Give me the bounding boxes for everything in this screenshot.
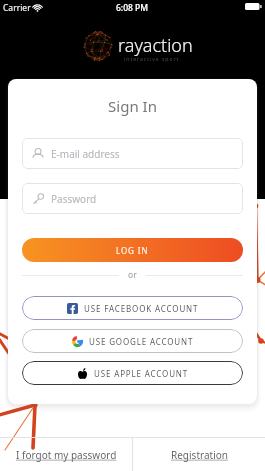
- staticText: E-mail address: [51, 147, 120, 161]
- button[interactable]: Registration: [133, 438, 265, 471]
- button[interactable]: LOG IN: [22, 238, 243, 262]
- button[interactable]: I forgot my password: [0, 438, 132, 471]
- button[interactable]: USE GOOGLE ACCOUNT: [22, 329, 243, 353]
- staticText: interactive sport: [124, 56, 180, 63]
- staticText: I forgot my password: [16, 448, 117, 462]
- button[interactable]: USE APPLE ACCOUNT: [22, 361, 243, 385]
- staticText: 6:08 PM: [116, 2, 149, 14]
- button[interactable]: E-mail address: [22, 138, 243, 169]
- button[interactable]: USE FACEBOOK ACCOUNT: [22, 296, 243, 320]
- staticText: rayaction: [118, 33, 193, 58]
- staticText: USE FACEBOOK ACCOUNT: [84, 303, 199, 314]
- staticText: Sign In: [8, 96, 257, 116]
- staticText: Password: [51, 192, 97, 206]
- staticText: Registration: [171, 448, 228, 462]
- staticText: or: [128, 269, 137, 281]
- staticText: USE APPLE ACCOUNT: [94, 368, 189, 379]
- button[interactable]: Password: [22, 183, 243, 214]
- staticText: LOG IN: [116, 245, 149, 256]
- staticText: USE GOOGLE ACCOUNT: [89, 336, 194, 347]
- staticText: Carrier: [3, 2, 31, 14]
